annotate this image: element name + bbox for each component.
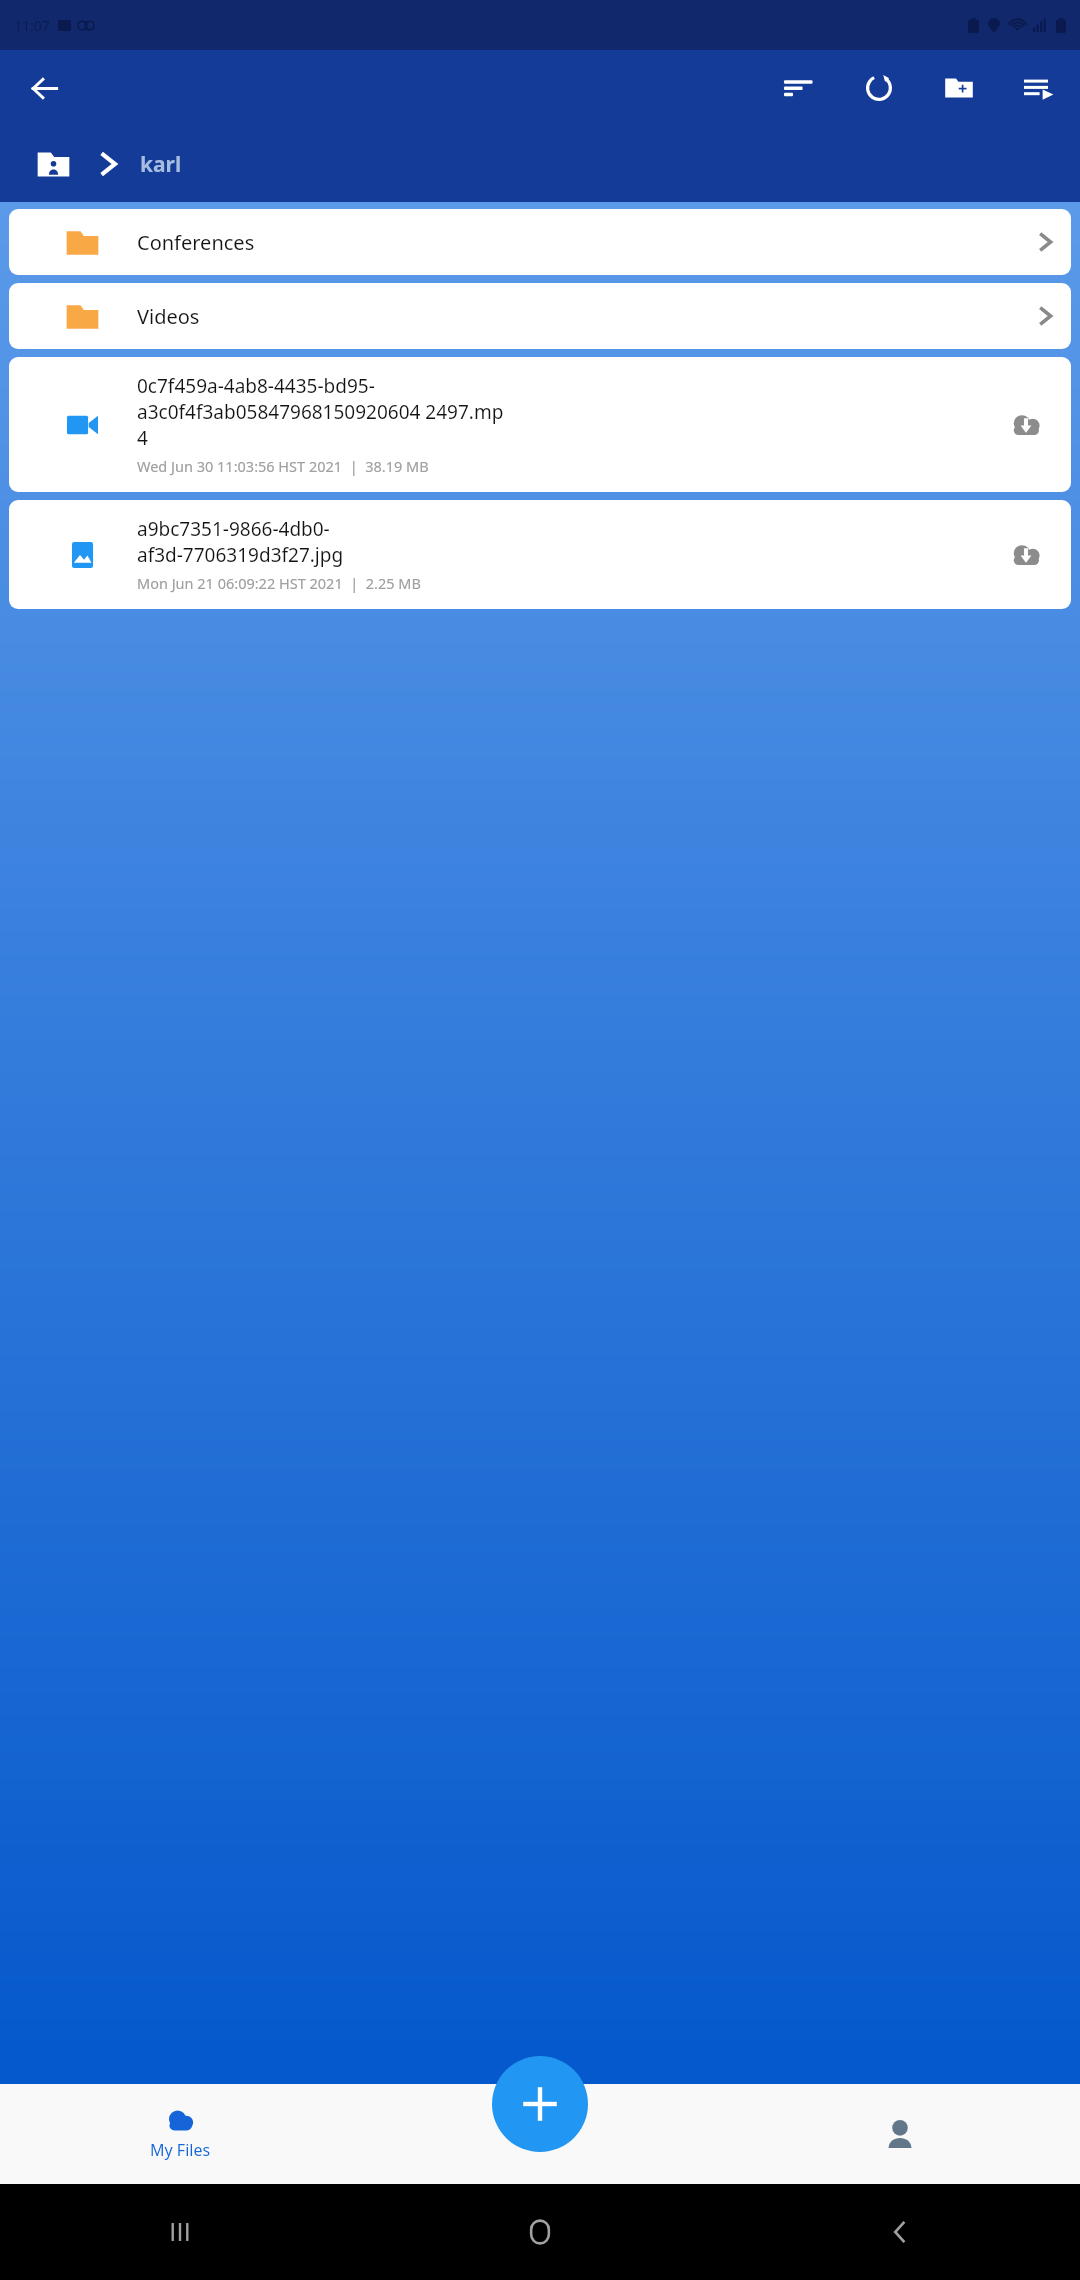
button[interactable]: Refresh <box>856 65 902 111</box>
button[interactable]: My Files <box>0 2084 360 2184</box>
staticText: Conferences <box>137 229 255 256</box>
staticText: My Files <box>150 2139 211 2161</box>
button[interactable]: 0c7f459a-4ab8-4435-bd95- <box>9 357 1071 492</box>
button[interactable]: Account <box>720 2084 1080 2184</box>
button[interactable]: New folder <box>936 65 982 111</box>
staticText: Videos <box>137 303 200 330</box>
staticText: 0c7f459a-4ab8-4435-bd95- <box>137 373 375 399</box>
button[interactable]: Download <box>999 528 1053 582</box>
button[interactable]: Sort <box>776 65 822 111</box>
staticText: af3d-7706319d3f27.jpg <box>137 542 344 568</box>
button[interactable]: a9bc7351-9866-4db0- <box>9 500 1071 609</box>
staticText: a9bc7351-9866-4db0- <box>137 516 330 542</box>
button[interactable]: Back <box>22 66 66 110</box>
staticText: 11:07 <box>14 16 50 35</box>
button[interactable]: Download <box>999 398 1053 452</box>
staticText: Mon Jun 21 06:09:22 HST 2021 | 2.25 MB <box>137 573 421 593</box>
button[interactable]: Add <box>492 2056 588 2152</box>
staticText: a3c0f4f3ab05847968150920604 2497.mp <box>137 399 504 425</box>
button[interactable]: Conferences <box>9 209 1071 275</box>
staticText: 4 <box>137 425 148 451</box>
staticText: karl <box>140 150 182 179</box>
staticText: Wed Jun 30 11:03:56 HST 2021 | 38.19 MB <box>137 456 429 476</box>
button[interactable]: Home folder <box>30 141 76 187</box>
button[interactable]: Queue <box>1016 65 1062 111</box>
button[interactable]: Videos <box>9 283 1071 349</box>
